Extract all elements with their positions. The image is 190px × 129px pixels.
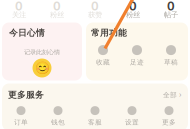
button[interactable]: 草稿 xyxy=(154,45,188,66)
staticText: 关注 xyxy=(12,10,26,19)
button[interactable]: 今日心情 xyxy=(2,22,82,80)
button[interactable]: 设置 xyxy=(113,106,150,126)
button[interactable]: 更多 xyxy=(150,106,187,126)
staticText: 0 xyxy=(167,0,175,13)
button[interactable]: 0 xyxy=(38,1,76,17)
staticText: 记录此刻心情 xyxy=(24,48,60,56)
staticText: 今日心情 xyxy=(9,27,45,38)
staticText: 😊 xyxy=(34,61,49,75)
staticText: 粉丝 xyxy=(50,10,64,19)
button[interactable]: 全部 › xyxy=(163,91,182,99)
button[interactable]: 0 xyxy=(152,1,190,17)
staticText: 0 xyxy=(15,0,23,13)
staticText: 0 xyxy=(91,0,99,13)
staticText: 常用功能 xyxy=(91,27,127,38)
staticText: 草稿 xyxy=(164,58,178,66)
staticText: 钱包 xyxy=(51,118,65,126)
button[interactable]: 钱包 xyxy=(39,106,76,126)
button[interactable]: 0 xyxy=(114,1,152,17)
staticText: 客服 xyxy=(88,118,102,126)
button[interactable]: 0 xyxy=(76,1,114,17)
button[interactable]: 足迹 xyxy=(120,45,154,66)
staticText: 足迹 xyxy=(130,58,144,66)
button[interactable]: 客服 xyxy=(76,106,113,126)
button[interactable]: 0 xyxy=(0,1,38,17)
staticText: 粉丝 xyxy=(126,10,140,19)
staticText: 0 xyxy=(129,0,137,13)
button[interactable]: 订单 xyxy=(2,106,39,126)
staticText: 获赞 xyxy=(88,10,102,19)
staticText: 更多 xyxy=(162,118,176,126)
staticText: 更多服务 xyxy=(8,89,44,100)
button[interactable]: 收藏 xyxy=(86,45,120,66)
staticText: 帖子 xyxy=(164,10,178,19)
staticText: 全部 › xyxy=(163,91,182,99)
staticText: 收藏 xyxy=(96,58,110,66)
staticText: 0 xyxy=(53,0,61,13)
staticText: 订单 xyxy=(14,118,28,126)
staticText: 设置 xyxy=(125,118,139,126)
